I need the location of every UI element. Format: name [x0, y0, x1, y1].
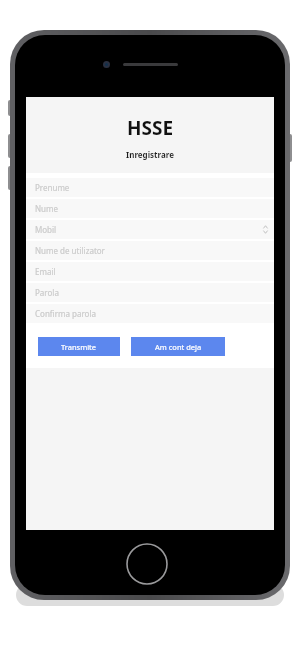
staticText: Inregistrare [26, 149, 274, 160]
staticText: Prenume [35, 182, 70, 193]
button[interactable]: Nume [26, 199, 274, 218]
button[interactable]: Am cont deja [131, 337, 225, 356]
staticText: Transmite [61, 342, 97, 352]
staticText: Nume [35, 203, 59, 214]
staticText: Nume de utilizator [35, 245, 105, 256]
button[interactable]: Mobil [26, 220, 274, 239]
staticText: Am cont deja [155, 342, 202, 352]
staticText: Email [35, 266, 56, 277]
button[interactable]: Nume de utilizator [26, 241, 274, 260]
staticText: Confirma parola [35, 308, 96, 319]
staticText: HSSE [26, 115, 274, 141]
staticText: Mobil [35, 224, 57, 235]
button[interactable]: Parola [26, 283, 274, 302]
button[interactable]: Home [126, 543, 168, 585]
button[interactable]: Confirma parola [26, 304, 274, 323]
staticText: Parola [35, 287, 59, 298]
button[interactable]: Prenume [26, 178, 274, 197]
button[interactable]: Transmite [38, 337, 120, 356]
button[interactable]: Email [26, 262, 274, 281]
